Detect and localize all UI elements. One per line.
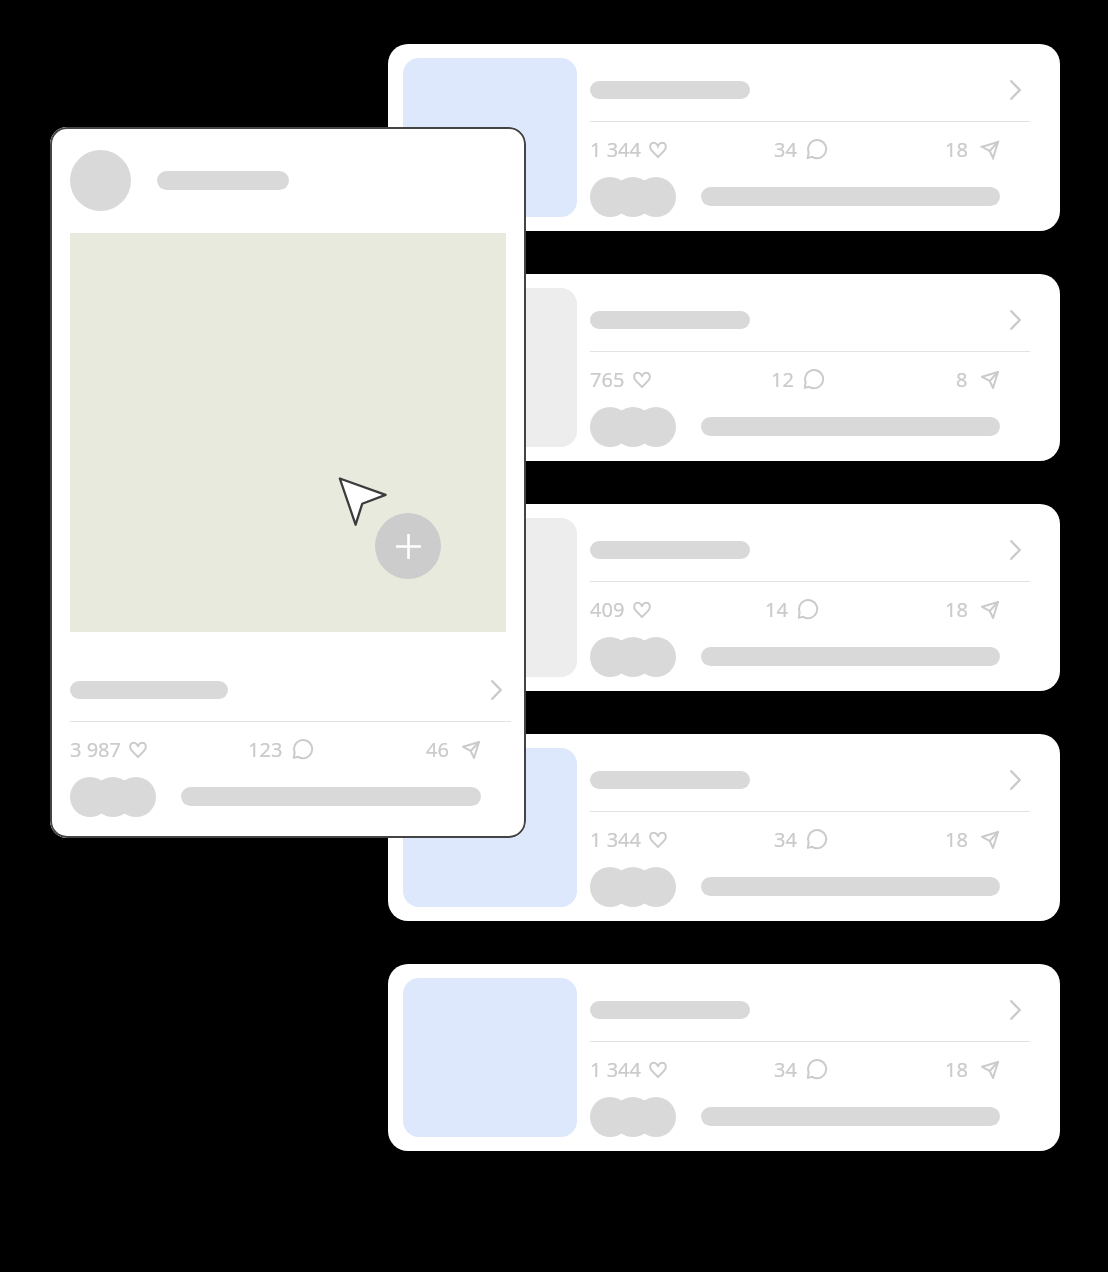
button[interactable]: 3 987 — [70, 736, 147, 763]
button[interactable]: Open post — [1010, 1000, 1021, 1020]
staticText: 18 — [945, 1056, 968, 1083]
staticText: 765 — [590, 366, 625, 393]
button[interactable]: Open post — [388, 964, 1060, 1151]
staticText: 18 — [945, 136, 968, 163]
button[interactable]: 8 — [956, 366, 999, 393]
button[interactable]: 18 — [945, 596, 999, 623]
staticText: 34 — [774, 1056, 797, 1083]
button[interactable]: 34 — [774, 826, 828, 853]
staticText: 34 — [774, 826, 797, 853]
staticText: 3 987 — [70, 736, 121, 763]
button[interactable]: 1 344 — [590, 826, 667, 853]
button[interactable]: Open post — [1010, 770, 1021, 790]
button[interactable]: 34 — [774, 1056, 828, 1083]
button[interactable]: Open post — [388, 504, 1060, 691]
button[interactable]: 12 — [771, 366, 825, 393]
button[interactable]: 765 — [590, 366, 651, 393]
staticText: 14 — [765, 596, 788, 623]
button[interactable]: 1 344 — [590, 136, 667, 163]
staticText: 34 — [774, 136, 797, 163]
staticText: 123 — [248, 736, 283, 763]
button[interactable]: Open post — [1010, 540, 1021, 560]
button[interactable]: Open post — [491, 680, 502, 700]
button[interactable]: Open post — [388, 44, 1060, 231]
button[interactable]: 123 — [248, 736, 314, 763]
staticText: 8 — [956, 366, 968, 393]
button[interactable]: 14 — [765, 596, 819, 623]
button[interactable]: Open post — [388, 274, 1060, 461]
button[interactable]: Add — [375, 513, 441, 579]
button[interactable]: Open post — [1010, 310, 1021, 330]
button[interactable]: 18 — [945, 826, 999, 853]
button[interactable]: 409 — [590, 596, 651, 623]
staticText: 46 — [426, 736, 449, 763]
staticText: 18 — [945, 826, 968, 853]
staticText: 18 — [945, 596, 968, 623]
staticText: 1 344 — [590, 826, 641, 853]
button[interactable]: 34 — [774, 136, 828, 163]
button[interactable]: Open post — [1010, 80, 1021, 100]
button[interactable]: Open post — [388, 734, 1060, 921]
button[interactable]: 18 — [945, 136, 999, 163]
staticText: 409 — [590, 596, 625, 623]
button[interactable]: 1 344 — [590, 1056, 667, 1083]
staticText: 1 344 — [590, 136, 641, 163]
staticText: 12 — [771, 366, 794, 393]
button[interactable]: Add — [50, 127, 526, 838]
button[interactable]: 46 — [426, 736, 480, 763]
button[interactable]: 18 — [945, 1056, 999, 1083]
staticText: 1 344 — [590, 1056, 641, 1083]
